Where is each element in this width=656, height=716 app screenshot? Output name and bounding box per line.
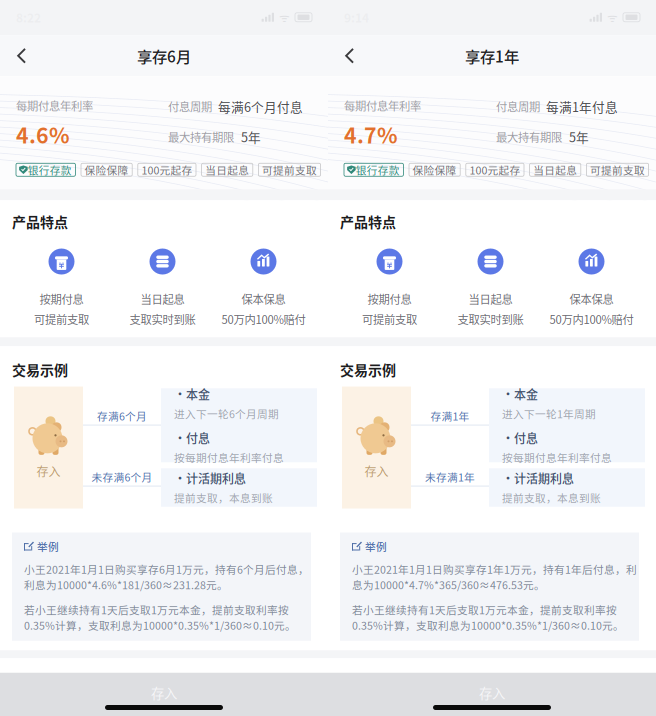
staticText: 产品特点 <box>12 211 68 231</box>
staticText: ・计活期利息 <box>502 470 574 487</box>
staticText: 每满6个月付息 <box>218 97 303 115</box>
staticText: ・付息 <box>502 429 538 447</box>
staticText: 付息周期 <box>168 98 212 115</box>
staticText: 进入下一轮1年周期 <box>502 406 596 421</box>
staticText: 若小王继续持有1天后支取1万元本金，提前支取利率按 <box>352 602 617 617</box>
staticText: 提前支取，本息到账 <box>502 490 601 505</box>
staticText: ・付息 <box>174 429 210 447</box>
staticText: 100元起存 <box>469 162 520 177</box>
staticText: 100元起存 <box>141 162 192 177</box>
staticText: 存入 <box>479 683 505 702</box>
staticText: 银行存款 <box>28 162 72 177</box>
staticText: 可提前支取 <box>34 311 89 327</box>
staticText: 支取实时到账 <box>457 311 523 327</box>
staticText: 若小王继续持有1天后支取1万元本金，提前支取利率按 <box>24 602 289 617</box>
staticText: 保险保障 <box>413 162 457 177</box>
staticText: 存入 <box>36 462 60 480</box>
staticText: 息为10000*4.7%*365/360≈476.53元。 <box>352 577 545 592</box>
staticText: 交易示例 <box>12 359 68 379</box>
staticText: 当日起息 <box>140 290 184 307</box>
staticText: 50万内100%赔付 <box>221 311 305 327</box>
staticText: 每期付息年利率 <box>16 97 93 114</box>
staticText: ᯤ <box>279 9 290 25</box>
staticText: 最大持有期限 <box>496 129 562 145</box>
button[interactable]: Back <box>0 35 42 76</box>
button[interactable]: 存入 <box>328 673 656 716</box>
staticText: 可提前支取 <box>590 162 645 177</box>
staticText: 按期付息 <box>39 290 83 307</box>
staticText: 按每期付息年利率付息 <box>174 450 284 465</box>
staticText: 付息周期 <box>496 98 540 115</box>
staticText: 50万内100%赔付 <box>549 311 633 327</box>
staticText: 0.35%计算，支取利息为10000*0.35%*1/360≈0.10元。 <box>24 617 296 633</box>
staticText: 存满1年 <box>430 408 469 424</box>
staticText: 最大持有期限 <box>168 129 234 145</box>
staticText: 利息为10000*4.6%*181/360≈231.28元。 <box>24 577 228 592</box>
staticText: 小王2021年1月1日购买享存6月1万元，持有6个月后付息， <box>24 561 309 577</box>
staticText: 5年 <box>569 128 589 146</box>
staticText: 存入 <box>364 462 388 480</box>
staticText: 存入 <box>151 683 177 702</box>
staticText: ・计活期利息 <box>174 470 246 487</box>
staticText: 0.35%计算，支取利息为10000*0.35%*1/360≈0.10元。 <box>352 617 624 633</box>
button[interactable]: Back <box>328 35 370 76</box>
staticText: 存满6个月 <box>97 408 147 424</box>
staticText: 提前支取，本息到账 <box>174 490 273 505</box>
staticText: 4.7% <box>344 119 398 150</box>
staticText: 举例 <box>37 538 59 554</box>
staticText: ・本金 <box>502 385 538 403</box>
staticText: 保本保息 <box>241 290 285 307</box>
staticText: ・本金 <box>174 385 210 403</box>
staticText: 小王2021年1月1日购买享存1年1万元，持有1年后付息，利 <box>352 561 637 577</box>
staticText: 每满1年付息 <box>546 97 618 115</box>
staticText: 5年 <box>241 128 261 146</box>
staticText: 当日起息 <box>533 162 577 177</box>
staticText: 产品特点 <box>340 211 396 231</box>
staticText: ᯤ <box>607 9 618 25</box>
staticText: 未存满6个月 <box>91 469 152 485</box>
staticText: 当日起息 <box>205 162 249 177</box>
staticText: 可提前支取 <box>362 311 417 327</box>
staticText: 按每期付息年利率付息 <box>502 450 612 465</box>
staticText: 保本保息 <box>569 290 613 307</box>
staticText: 保险保障 <box>85 162 129 177</box>
button[interactable]: 存入 <box>0 673 328 716</box>
staticText: 按期付息 <box>367 290 411 307</box>
staticText: 当日起息 <box>468 290 512 307</box>
staticText: 可提前支取 <box>262 162 317 177</box>
staticText: 未存满1年 <box>425 469 475 485</box>
staticText: 进入下一轮6个月周期 <box>174 406 279 421</box>
staticText: 享存6月 <box>137 45 191 67</box>
staticText: 支取实时到账 <box>129 311 195 327</box>
staticText: 举例 <box>365 538 387 554</box>
staticText: 每期付息年利率 <box>344 97 421 114</box>
staticText: 交易示例 <box>340 359 396 379</box>
staticText: 4.6% <box>16 119 70 150</box>
staticText: 银行存款 <box>356 162 400 177</box>
staticText: 享存1年 <box>465 45 519 67</box>
